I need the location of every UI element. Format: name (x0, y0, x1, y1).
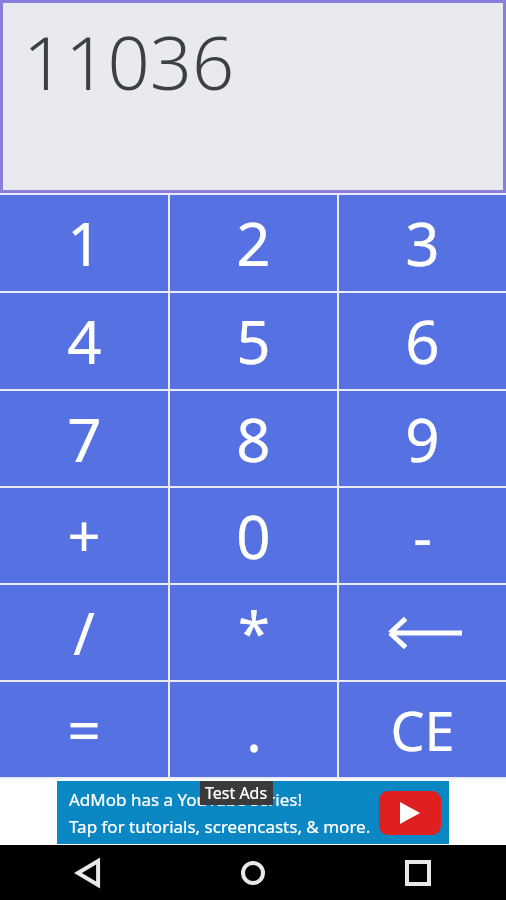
staticText: 7 (67, 398, 102, 480)
button[interactable]: 6 (339, 293, 506, 389)
button[interactable]: - (339, 488, 506, 583)
staticText: 1 (67, 202, 102, 284)
staticText: AdMob has a YouTube series! (69, 788, 303, 811)
staticText: 6 (405, 300, 440, 382)
button[interactable]: 4 (0, 293, 168, 389)
button[interactable]: Backspace (339, 585, 506, 680)
button[interactable]: + (0, 488, 168, 583)
staticText: 2 (236, 202, 271, 284)
staticText: CE (390, 693, 455, 767)
button[interactable]: 7 (0, 391, 168, 486)
staticText: 9 (405, 398, 440, 480)
button[interactable]: * (170, 585, 337, 680)
staticText: / (73, 593, 95, 672)
button[interactable]: 5 (170, 293, 337, 389)
staticText: - (413, 496, 432, 575)
button[interactable]: 3 (339, 195, 506, 291)
staticText: 11036 (23, 11, 235, 112)
staticText: 5 (236, 300, 271, 382)
other: Play video (379, 791, 441, 835)
button[interactable]: 8 (170, 391, 337, 486)
staticText: 4 (67, 300, 102, 382)
button[interactable]: AdMob has a YouTube series! (57, 781, 449, 844)
staticText: 0 (236, 495, 271, 577)
staticText: + (67, 496, 101, 575)
staticText: 8 (236, 398, 271, 480)
button[interactable]: Recent apps (390, 845, 446, 900)
button[interactable]: / (0, 585, 168, 680)
staticText: * (238, 593, 270, 672)
staticText: 3 (405, 202, 440, 284)
button[interactable]: Back (60, 845, 116, 900)
button[interactable]: 1 (0, 195, 168, 291)
staticText: Test Ads (205, 782, 268, 804)
staticText: = (67, 690, 101, 769)
button[interactable]: Home (225, 845, 281, 900)
button[interactable]: 0 (170, 488, 337, 583)
button[interactable]: 9 (339, 391, 506, 486)
button[interactable]: CE (339, 682, 506, 777)
button[interactable]: 2 (170, 195, 337, 291)
staticText: . (246, 690, 262, 769)
staticText: Tap for tutorials, screencasts, & more. (69, 815, 371, 838)
button[interactable]: . (170, 682, 337, 777)
button[interactable]: = (0, 682, 168, 777)
